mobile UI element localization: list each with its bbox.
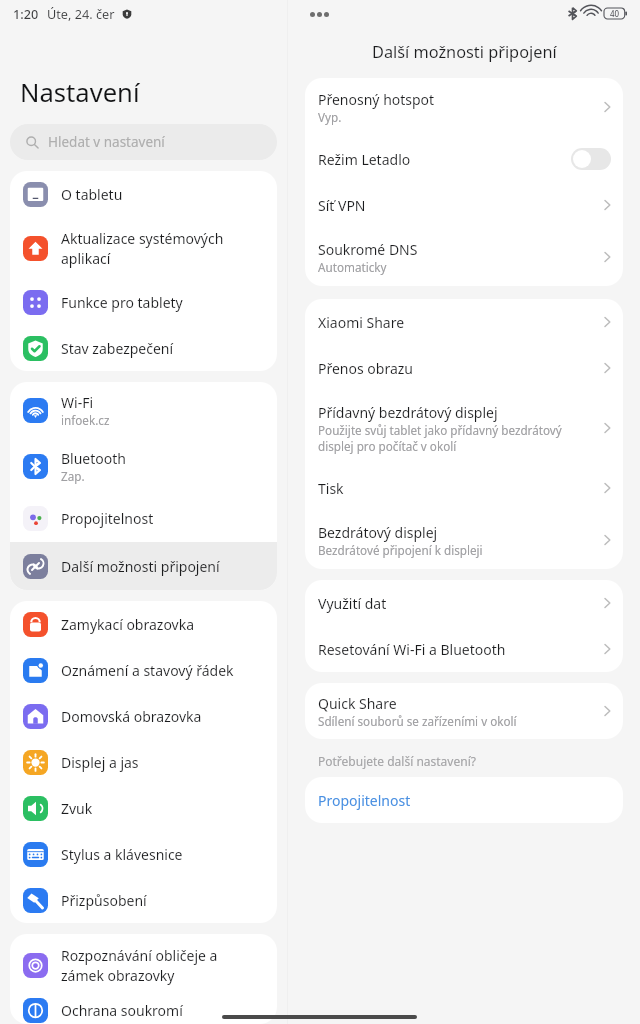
button[interactable]: O tabletu — [10, 171, 277, 217]
staticText: Ochrana soukromí — [61, 1001, 183, 1020]
staticText: Xiaomi Share — [318, 313, 405, 332]
staticText: infoek.cz — [61, 412, 110, 428]
staticText: Propojitelnost — [318, 791, 411, 810]
staticText: Domovská obrazovka — [61, 707, 202, 726]
staticText: Zap. — [61, 468, 85, 484]
button[interactable]: Zvuk — [10, 785, 277, 831]
button[interactable]: Soukromé DNS — [305, 228, 623, 286]
staticText: Tisk — [318, 479, 344, 498]
button[interactable]: Oznámení a stavový řádek — [10, 647, 277, 693]
staticText: Propojitelnost — [61, 509, 154, 528]
staticText: Vyp. — [318, 109, 342, 125]
button[interactable]: Stav zabezpečení — [10, 325, 277, 371]
button[interactable]: Wi-Fi — [10, 382, 277, 438]
staticText: Soukromé DNS — [318, 240, 418, 259]
staticText: Rozpoznávání obličeje a zámek obrazovky — [61, 946, 242, 985]
staticText: Bezdrátový displej — [318, 523, 438, 542]
staticText: Přenos obrazu — [318, 359, 414, 378]
button[interactable]: Propojitelnost — [10, 494, 277, 542]
button[interactable]: Tisk — [305, 465, 623, 511]
staticText: 1:20 — [13, 5, 39, 22]
button[interactable]: Hledat v nastavení — [10, 124, 277, 160]
staticText: Hledat v nastavení — [48, 133, 165, 151]
staticText: O tabletu — [61, 185, 123, 204]
staticText: Wi-Fi — [61, 393, 94, 412]
staticText: Přenosný hotspot — [318, 90, 435, 109]
staticText: Resetování Wi-Fi a Bluetooth — [318, 640, 506, 659]
staticText: Stylus a klávesnice — [61, 845, 183, 864]
button[interactable]: More options — [310, 4, 329, 24]
staticText: 40 — [610, 8, 620, 19]
staticText: Přídavný bezdrátový displej — [318, 403, 498, 422]
staticText: Použijte svůj tablet jako přídavný bezdr… — [318, 422, 593, 454]
button[interactable]: Xiaomi Share — [305, 299, 623, 345]
button[interactable]: Rozpoznávání obličeje a zámek obrazovky — [10, 934, 277, 996]
button[interactable]: Bezdrátový displej — [305, 511, 623, 569]
staticText: Bluetooth — [61, 449, 126, 468]
staticText: Režim Letadlo — [318, 150, 411, 169]
button[interactable]: Přizpůsobení — [10, 877, 277, 923]
staticText: Displej a jas — [61, 753, 139, 772]
button[interactable]: Režim Letadlo — [305, 136, 623, 182]
button[interactable]: Resetování Wi-Fi a Bluetooth — [305, 626, 623, 672]
button[interactable]: Bluetooth — [10, 438, 277, 494]
button[interactable]: Ochrana soukromí — [10, 996, 277, 1024]
button[interactable]: Airplane mode toggle — [571, 148, 611, 170]
staticText: Quick Share — [318, 694, 397, 713]
button[interactable]: Další možnosti připojení — [10, 542, 277, 590]
staticText: Zamykací obrazovka — [61, 615, 195, 634]
button[interactable]: Přenosný hotspot — [305, 78, 623, 136]
button[interactable]: Quick Share — [305, 683, 623, 739]
button[interactable]: Aktualizace systémových aplikací — [10, 217, 277, 279]
button[interactable]: Domovská obrazovka — [10, 693, 277, 739]
staticText: Síť VPN — [318, 196, 366, 215]
button[interactable]: Funkce pro tablety — [10, 279, 277, 325]
staticText: Nastavení — [20, 75, 140, 110]
button[interactable]: Zamykací obrazovka — [10, 601, 277, 647]
staticText: Zvuk — [61, 799, 93, 818]
staticText: Oznámení a stavový řádek — [61, 661, 234, 680]
staticText: Funkce pro tablety — [61, 293, 183, 312]
staticText: Bezdrátové připojení k displeji — [318, 542, 483, 558]
button[interactable]: Přídavný bezdrátový displej — [305, 391, 623, 465]
staticText: Potřebujete další nastavení? — [318, 753, 476, 769]
staticText: Aktualizace systémových aplikací — [61, 229, 242, 268]
button[interactable]: Využití dat — [305, 580, 623, 626]
staticText: Další možnosti připojení — [61, 557, 220, 576]
staticText: Úte, 24. čer — [47, 5, 115, 22]
button[interactable]: Přenos obrazu — [305, 345, 623, 391]
staticText: Automaticky — [318, 259, 387, 275]
staticText: Další možnosti připojení — [372, 41, 557, 63]
button[interactable]: Propojitelnost — [305, 777, 623, 823]
button[interactable]: Stylus a klávesnice — [10, 831, 277, 877]
staticText: Využití dat — [318, 594, 387, 613]
staticText: Stav zabezpečení — [61, 339, 174, 358]
staticText: Sdílení souborů se zařízeními v okolí — [318, 713, 517, 729]
staticText: Přizpůsobení — [61, 891, 147, 910]
button[interactable]: Displej a jas — [10, 739, 277, 785]
button[interactable]: Síť VPN — [305, 182, 623, 228]
